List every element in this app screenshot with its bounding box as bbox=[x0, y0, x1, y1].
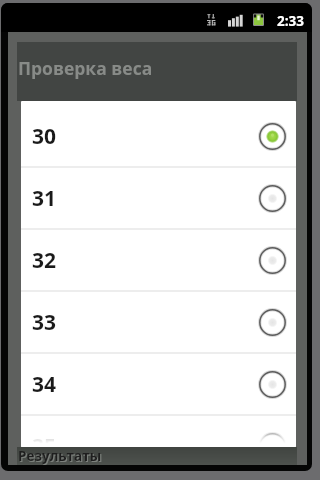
staticText: 32 bbox=[32, 246, 57, 275]
button[interactable]: 34 bbox=[21, 354, 296, 414]
staticText: 31 bbox=[32, 184, 57, 213]
staticText: 30 bbox=[32, 122, 57, 151]
button[interactable]: Проверка веса bbox=[17, 42, 297, 101]
button[interactable]: 33 bbox=[21, 292, 296, 352]
staticText: 35 bbox=[32, 432, 57, 447]
staticText: 33 bbox=[32, 308, 57, 337]
staticText: 2:33 bbox=[277, 12, 305, 30]
button[interactable]: 31 bbox=[21, 168, 296, 228]
staticText: Проверка веса bbox=[18, 56, 153, 80]
staticText: Результаты bbox=[19, 448, 103, 466]
staticText: Результаты bbox=[18, 447, 102, 465]
button[interactable]: 32 bbox=[21, 230, 296, 290]
button[interactable]: 35 bbox=[21, 416, 296, 447]
button[interactable]: 30 bbox=[21, 106, 296, 166]
staticText: 34 bbox=[32, 370, 57, 399]
button[interactable]: Результаты bbox=[17, 447, 297, 465]
